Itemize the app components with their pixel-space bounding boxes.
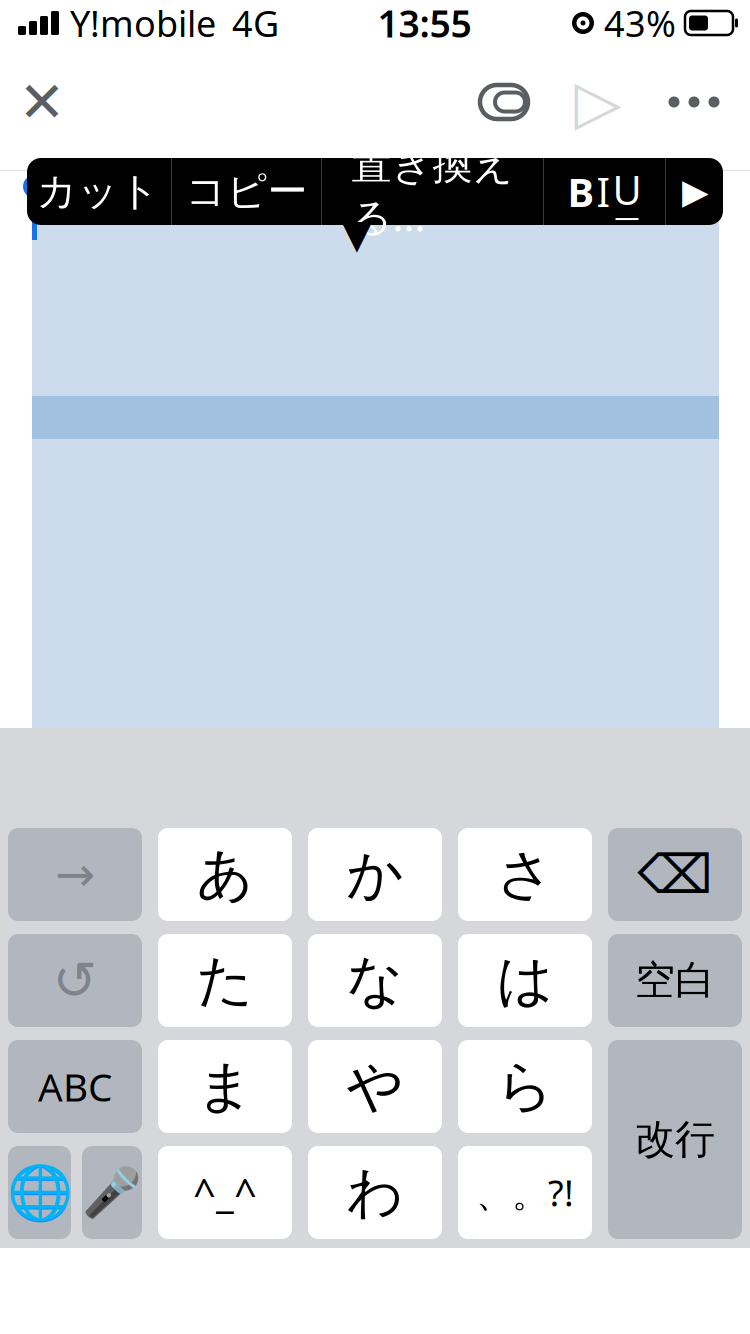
staticText: コピー xyxy=(185,167,307,216)
staticText: 改行 xyxy=(635,1115,715,1164)
staticText: あ xyxy=(196,840,253,909)
staticText: ▶ xyxy=(682,172,709,211)
button[interactable]: 改行 xyxy=(608,1040,742,1239)
staticText: ▷ xyxy=(574,67,621,137)
button[interactable]: More options xyxy=(646,62,742,142)
staticText: ↺ xyxy=(52,950,97,1011)
button[interactable]: Change keyboard xyxy=(8,1146,71,1239)
staticText: 🌐 xyxy=(6,1162,72,1223)
staticText: 43% xyxy=(604,0,676,47)
staticText: は xyxy=(496,946,553,1015)
button[interactable]: 空白 xyxy=(608,934,742,1027)
button[interactable]: 置き換える... xyxy=(322,158,543,225)
staticText: → xyxy=(55,847,95,902)
button[interactable]: Attach file xyxy=(458,62,550,142)
button[interactable]: 、。?! xyxy=(458,1146,592,1239)
button[interactable]: ら xyxy=(458,1040,592,1133)
button[interactable]: → xyxy=(8,828,142,921)
button[interactable]: Close xyxy=(0,62,84,142)
staticText: ⌫ xyxy=(637,844,712,905)
staticText: I xyxy=(596,165,610,218)
staticText: ▼ xyxy=(341,211,372,257)
button[interactable]: ^_^ xyxy=(158,1146,292,1239)
staticText: カット xyxy=(36,167,159,216)
staticText: 空白 xyxy=(635,956,715,1005)
button[interactable]: さ xyxy=(458,828,592,921)
staticText: や xyxy=(346,1052,403,1121)
staticText: 🎤 xyxy=(82,1165,142,1220)
button[interactable]: あ xyxy=(158,828,292,921)
staticText: ま xyxy=(196,1052,253,1121)
staticText: ら xyxy=(496,1052,553,1121)
staticText: か xyxy=(346,840,403,909)
button[interactable]: は xyxy=(458,934,592,1027)
staticText: ✕ xyxy=(18,70,65,134)
button[interactable]: Dictation xyxy=(82,1146,142,1239)
button[interactable]: カット xyxy=(25,158,171,225)
staticText: わ xyxy=(346,1158,403,1227)
button[interactable]: や xyxy=(308,1040,442,1133)
staticText: 、。?! xyxy=(476,1168,574,1216)
button[interactable]: ま xyxy=(158,1040,292,1133)
staticText: た xyxy=(196,946,253,1015)
button[interactable]: か xyxy=(308,828,442,921)
button[interactable]: た xyxy=(158,934,292,1027)
staticText: B xyxy=(567,165,594,218)
staticText: さ xyxy=(496,840,553,909)
button[interactable]: B xyxy=(544,158,665,225)
button[interactable]: Send xyxy=(550,62,646,142)
button[interactable]: ABC xyxy=(8,1040,142,1133)
button[interactable]: Delete xyxy=(608,828,742,921)
button[interactable]: コピー xyxy=(172,158,321,225)
button[interactable]: ↺ xyxy=(8,934,142,1027)
button[interactable]: More actions xyxy=(666,158,725,225)
staticText: ABC xyxy=(38,1061,112,1112)
staticText: 4G xyxy=(232,0,279,47)
staticText: 置き換える... xyxy=(351,140,513,243)
staticText: 13:55 xyxy=(377,0,471,48)
staticText: Y!mobile xyxy=(70,0,216,47)
staticText: U xyxy=(612,163,641,216)
button[interactable]: な xyxy=(308,934,442,1027)
button[interactable]: わ xyxy=(308,1146,442,1239)
staticText: な xyxy=(346,946,403,1015)
staticText: ^_^ xyxy=(193,1166,257,1219)
